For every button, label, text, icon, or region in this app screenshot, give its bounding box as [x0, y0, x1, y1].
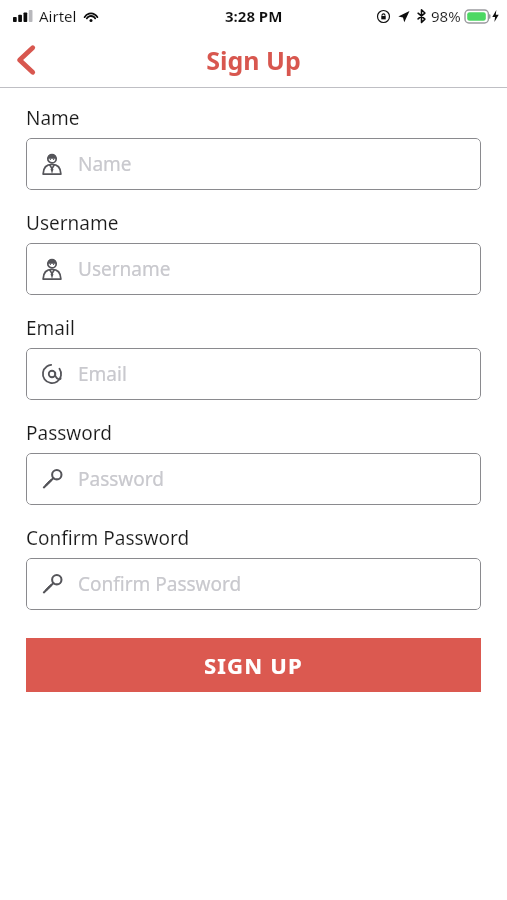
- staticText: Confirm Password: [78, 571, 242, 597]
- staticText: Name: [78, 151, 132, 177]
- button[interactable]: Username: [26, 243, 481, 295]
- staticText: Airtel: [39, 6, 77, 26]
- staticText: Email: [26, 315, 75, 341]
- staticText: Sign Up: [206, 43, 301, 77]
- staticText: Name: [26, 105, 80, 131]
- button[interactable]: Confirm Password: [26, 558, 481, 610]
- staticText: Password: [26, 420, 112, 446]
- button[interactable]: Name: [26, 138, 481, 190]
- staticText: SIGN UP: [204, 650, 303, 680]
- button[interactable]: SIGN UP: [26, 638, 481, 692]
- staticText: Email: [78, 361, 127, 387]
- staticText: Password: [78, 466, 164, 492]
- staticText: Username: [78, 256, 171, 282]
- staticText: Confirm Password: [26, 525, 190, 551]
- button[interactable]: Back: [0, 34, 52, 86]
- staticText: Username: [26, 210, 119, 236]
- staticText: 98%: [431, 6, 461, 26]
- staticText: 3:28 PM: [225, 6, 283, 26]
- button[interactable]: Password: [26, 453, 481, 505]
- button[interactable]: Email: [26, 348, 481, 400]
